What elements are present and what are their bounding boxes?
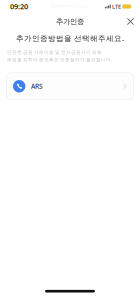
staticText: LTE bbox=[112, 3, 121, 10]
staticText: 추가인증방법을 선택해주세요. bbox=[16, 33, 124, 43]
staticText: ARS bbox=[31, 82, 43, 91]
staticText: 안전한 금융 거래이용 및 전자금융사기 피해 bbox=[7, 49, 102, 55]
staticText: 예방을 위하여 본인확인 인증절차가 필요합니다. bbox=[7, 57, 112, 63]
staticText: 09:20 bbox=[10, 1, 28, 11]
button[interactable]: ARS bbox=[6, 73, 133, 100]
button[interactable]: 닫기 bbox=[123, 14, 137, 28]
staticText: 추가인증 bbox=[56, 17, 84, 26]
